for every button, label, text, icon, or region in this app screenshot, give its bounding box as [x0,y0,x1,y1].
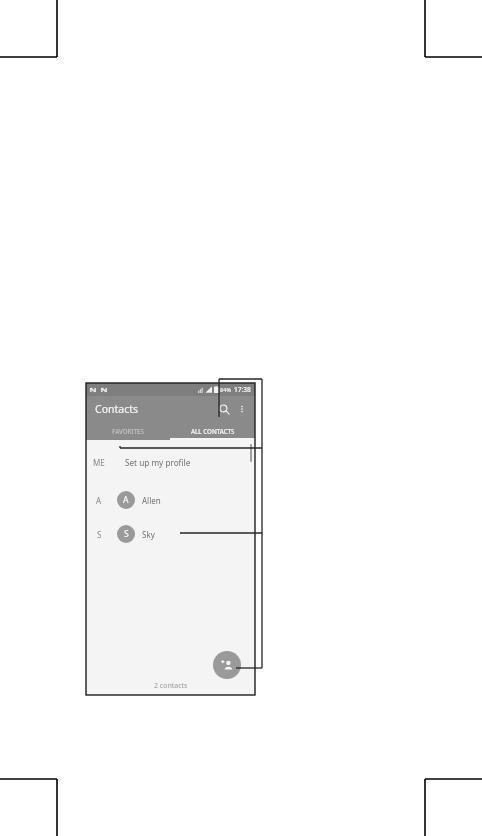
button[interactable]: FAVORITES [86,422,170,440]
staticText: ME [93,457,105,468]
staticText: A [96,495,102,506]
staticText: ALL CONTACTS [191,427,235,435]
staticText: 17:38 [234,385,251,394]
staticText: S [124,528,129,540]
staticText: S [97,529,102,540]
staticText: FAVORITES [112,427,144,435]
staticText: 2 contacts [154,681,188,691]
staticText: 84% [220,386,232,394]
button[interactable]: More options [234,401,250,417]
staticText: A [123,494,129,506]
button[interactable]: ALL CONTACTS [170,422,255,440]
button[interactable]: S [86,521,255,547]
button[interactable]: Add contact [213,651,241,679]
staticText: Contacts [95,402,139,416]
button[interactable]: A [86,487,255,513]
staticText: Set up my profile [125,457,191,468]
button[interactable]: Search [214,399,234,419]
staticText: Sky [142,529,155,540]
button[interactable]: ME [86,449,255,475]
staticText: Allen [142,495,161,506]
